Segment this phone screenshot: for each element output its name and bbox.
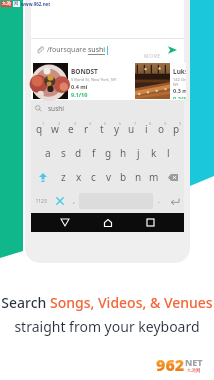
button[interactable]: j [131, 141, 146, 165]
staticText: e [68, 122, 74, 136]
staticText: , [73, 196, 75, 206]
button[interactable]: Enter [164, 189, 184, 213]
staticText: g [105, 146, 112, 160]
button[interactable]: 8 [139, 117, 154, 141]
staticText: r [84, 122, 89, 136]
staticText: y [114, 122, 120, 136]
other: Search [35, 105, 42, 112]
staticText: MORE [144, 53, 161, 60]
staticText: . [158, 196, 160, 206]
staticText: 九游 [2, 1, 11, 7]
button[interactable]: c [86, 165, 101, 189]
staticText: 九游网 [187, 368, 201, 374]
staticText: b [120, 170, 127, 184]
staticText: 9 [164, 121, 167, 126]
staticText: 5 [104, 121, 107, 126]
staticText: 7 [134, 121, 137, 126]
button[interactable]: n [131, 165, 146, 189]
staticText: 网 [14, 1, 19, 7]
button[interactable]: BONDST [33, 63, 131, 99]
button[interactable]: 2 [47, 117, 63, 141]
button[interactable]: 3 [63, 117, 79, 141]
button[interactable]: Shift [31, 165, 55, 189]
staticText: 0 [179, 121, 182, 126]
staticText: c [91, 170, 96, 184]
button[interactable]: l [161, 141, 176, 165]
staticText: m [149, 170, 159, 184]
button[interactable]: ?123 [31, 189, 52, 213]
staticText: l [167, 146, 170, 160]
staticText: 0.4 mi [71, 83, 88, 90]
staticText: 142 Orchard St, NY [173, 77, 186, 87]
staticText: x [76, 170, 82, 184]
staticText: a [45, 146, 51, 160]
button[interactable]: 7 [124, 117, 139, 141]
staticText: sushi [88, 45, 106, 55]
button[interactable]: Clear [52, 189, 68, 213]
staticText: d [75, 146, 82, 160]
staticText: i [145, 122, 148, 136]
staticText: v [106, 170, 112, 184]
button[interactable]: 9 [154, 117, 169, 141]
button[interactable]: b [116, 165, 131, 189]
staticText: /foursquare [47, 45, 88, 55]
staticText: 0.3 mi [173, 87, 186, 94]
staticText: z [61, 170, 66, 184]
button[interactable]: 6 [109, 117, 124, 141]
staticText: s [61, 146, 66, 160]
button[interactable]: Luksus [135, 63, 186, 99]
button[interactable]: Recents [141, 213, 160, 232]
button[interactable]: d [71, 141, 86, 165]
staticText: u [128, 122, 135, 136]
button[interactable]: g [101, 141, 116, 165]
staticText: 2 [58, 121, 61, 126]
button[interactable]: x [71, 165, 86, 189]
staticText: sushi [48, 104, 64, 113]
staticText: straight from your keyboard [14, 317, 200, 336]
staticText: Luksus [173, 67, 186, 76]
staticText: t [100, 122, 104, 136]
button[interactable]: Home [98, 213, 117, 232]
staticText: p [173, 122, 180, 136]
button[interactable]: f [86, 141, 101, 165]
staticText: 9.1/10 [71, 91, 88, 98]
button[interactable]: 4 [79, 117, 94, 141]
staticText: www.962.net [21, 1, 51, 7]
staticText: 5 Bond St, New York, NY [71, 77, 117, 82]
staticText: NET [185, 356, 203, 368]
button[interactable]: , [68, 189, 79, 213]
staticText: 1 [42, 121, 45, 126]
staticText: Search Songs, Videos, & Venues [1, 293, 213, 312]
button[interactable]: 5 [94, 117, 109, 141]
staticText: h [120, 146, 127, 160]
staticText: o [158, 122, 165, 136]
staticText: 962 [156, 354, 185, 376]
staticText: 6 [119, 121, 122, 126]
staticText: n [135, 170, 142, 184]
button[interactable]: 0 [169, 117, 184, 141]
staticText: k [151, 146, 157, 160]
button[interactable]: z [55, 165, 71, 189]
staticText: 8 [149, 121, 152, 126]
button[interactable]: v [101, 165, 116, 189]
button[interactable]: Back [55, 213, 74, 232]
staticText: w [51, 122, 59, 136]
staticText: 3 [74, 121, 77, 126]
button[interactable]: m [146, 165, 161, 189]
staticText: BONDST [71, 67, 98, 76]
button[interactable]: h [116, 141, 131, 165]
other: Attach [36, 46, 44, 54]
other: Send [168, 46, 177, 54]
button[interactable]: s [56, 141, 71, 165]
button[interactable]: 1 [31, 117, 47, 141]
staticText: f [92, 146, 96, 160]
staticText: 9.2/10 [173, 95, 186, 99]
button[interactable]: Backspace [161, 165, 184, 189]
staticText: j [137, 146, 140, 160]
button[interactable]: a [40, 141, 56, 165]
button[interactable]: k [146, 141, 161, 165]
staticText: 4 [89, 121, 92, 126]
staticText: ?123 [36, 198, 47, 205]
